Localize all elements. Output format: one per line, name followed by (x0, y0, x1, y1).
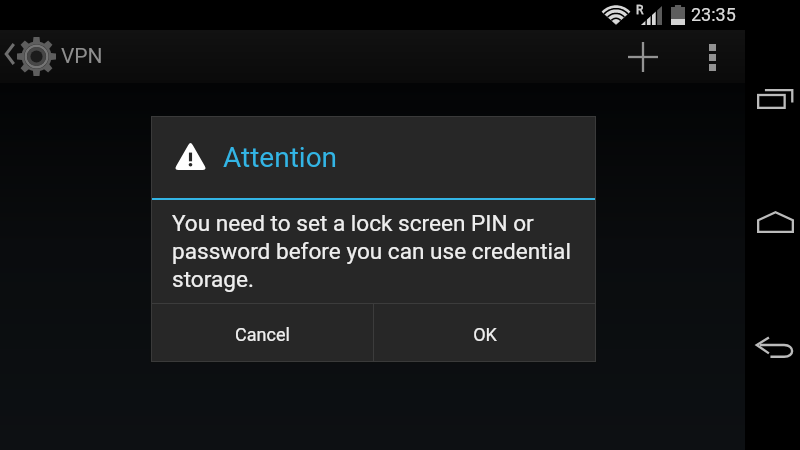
staticText: R (636, 3, 644, 17)
button[interactable]: Cancel (152, 304, 373, 361)
staticText: You need to set a lock screen PIN or pas… (172, 210, 589, 293)
button[interactable]: Recent apps (745, 52, 800, 146)
staticText: OK (473, 324, 497, 345)
button[interactable]: VPN (0, 30, 112, 83)
button[interactable]: More options (686, 30, 740, 83)
button[interactable]: Back (745, 300, 800, 394)
button[interactable]: OK (374, 304, 595, 361)
staticText: Cancel (235, 324, 290, 345)
button[interactable]: Home (745, 175, 800, 269)
staticText: 23:35 (691, 4, 736, 25)
staticText: Attention (223, 141, 338, 174)
staticText: VPN (61, 44, 103, 69)
button[interactable]: Add VPN profile (614, 30, 672, 83)
